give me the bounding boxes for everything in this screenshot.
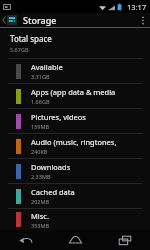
- staticText: 13:17: [127, 2, 147, 12]
- staticText: 202MB: [31, 198, 50, 205]
- staticText: 3.31GB: [31, 73, 50, 80]
- staticText: 240KB: [31, 148, 48, 155]
- staticText: Misc.: [31, 211, 49, 221]
- button[interactable]: Navigate up: [0, 13, 19, 27]
- staticText: Cached data: [31, 187, 75, 197]
- staticText: Pictures, videos: [31, 112, 86, 122]
- button[interactable]: Total space: [0, 28, 150, 58]
- button[interactable]: More options: [136, 13, 150, 27]
- button[interactable]: Back: [0, 230, 50, 250]
- staticText: Apps (app data & media content): [31, 87, 142, 97]
- staticText: Audio (music, ringtones, podcast…: [31, 137, 142, 147]
- button[interactable]: Apps (app data & media content): [0, 84, 150, 108]
- button[interactable]: Cached data: [0, 184, 150, 208]
- staticText: Storage: [23, 14, 57, 26]
- staticText: 353MB: [31, 222, 50, 229]
- staticText: Downloads: [31, 162, 71, 172]
- staticText: 2.33MB: [31, 173, 51, 180]
- button[interactable]: Available: [0, 59, 150, 83]
- button[interactable]: Home: [50, 230, 100, 250]
- button[interactable]: Downloads: [0, 159, 150, 183]
- button[interactable]: Recent apps: [100, 230, 150, 250]
- button[interactable]: Misc.: [0, 209, 150, 230]
- button[interactable]: Pictures, videos: [0, 109, 150, 133]
- staticText: 159MB: [31, 123, 50, 130]
- staticText: Total space: [10, 33, 52, 44]
- staticText: 1.66GB: [31, 98, 50, 105]
- button[interactable]: Audio (music, ringtones, podcast…: [0, 134, 150, 158]
- staticText: 5.67GB: [10, 46, 29, 53]
- staticText: Available: [31, 62, 63, 72]
